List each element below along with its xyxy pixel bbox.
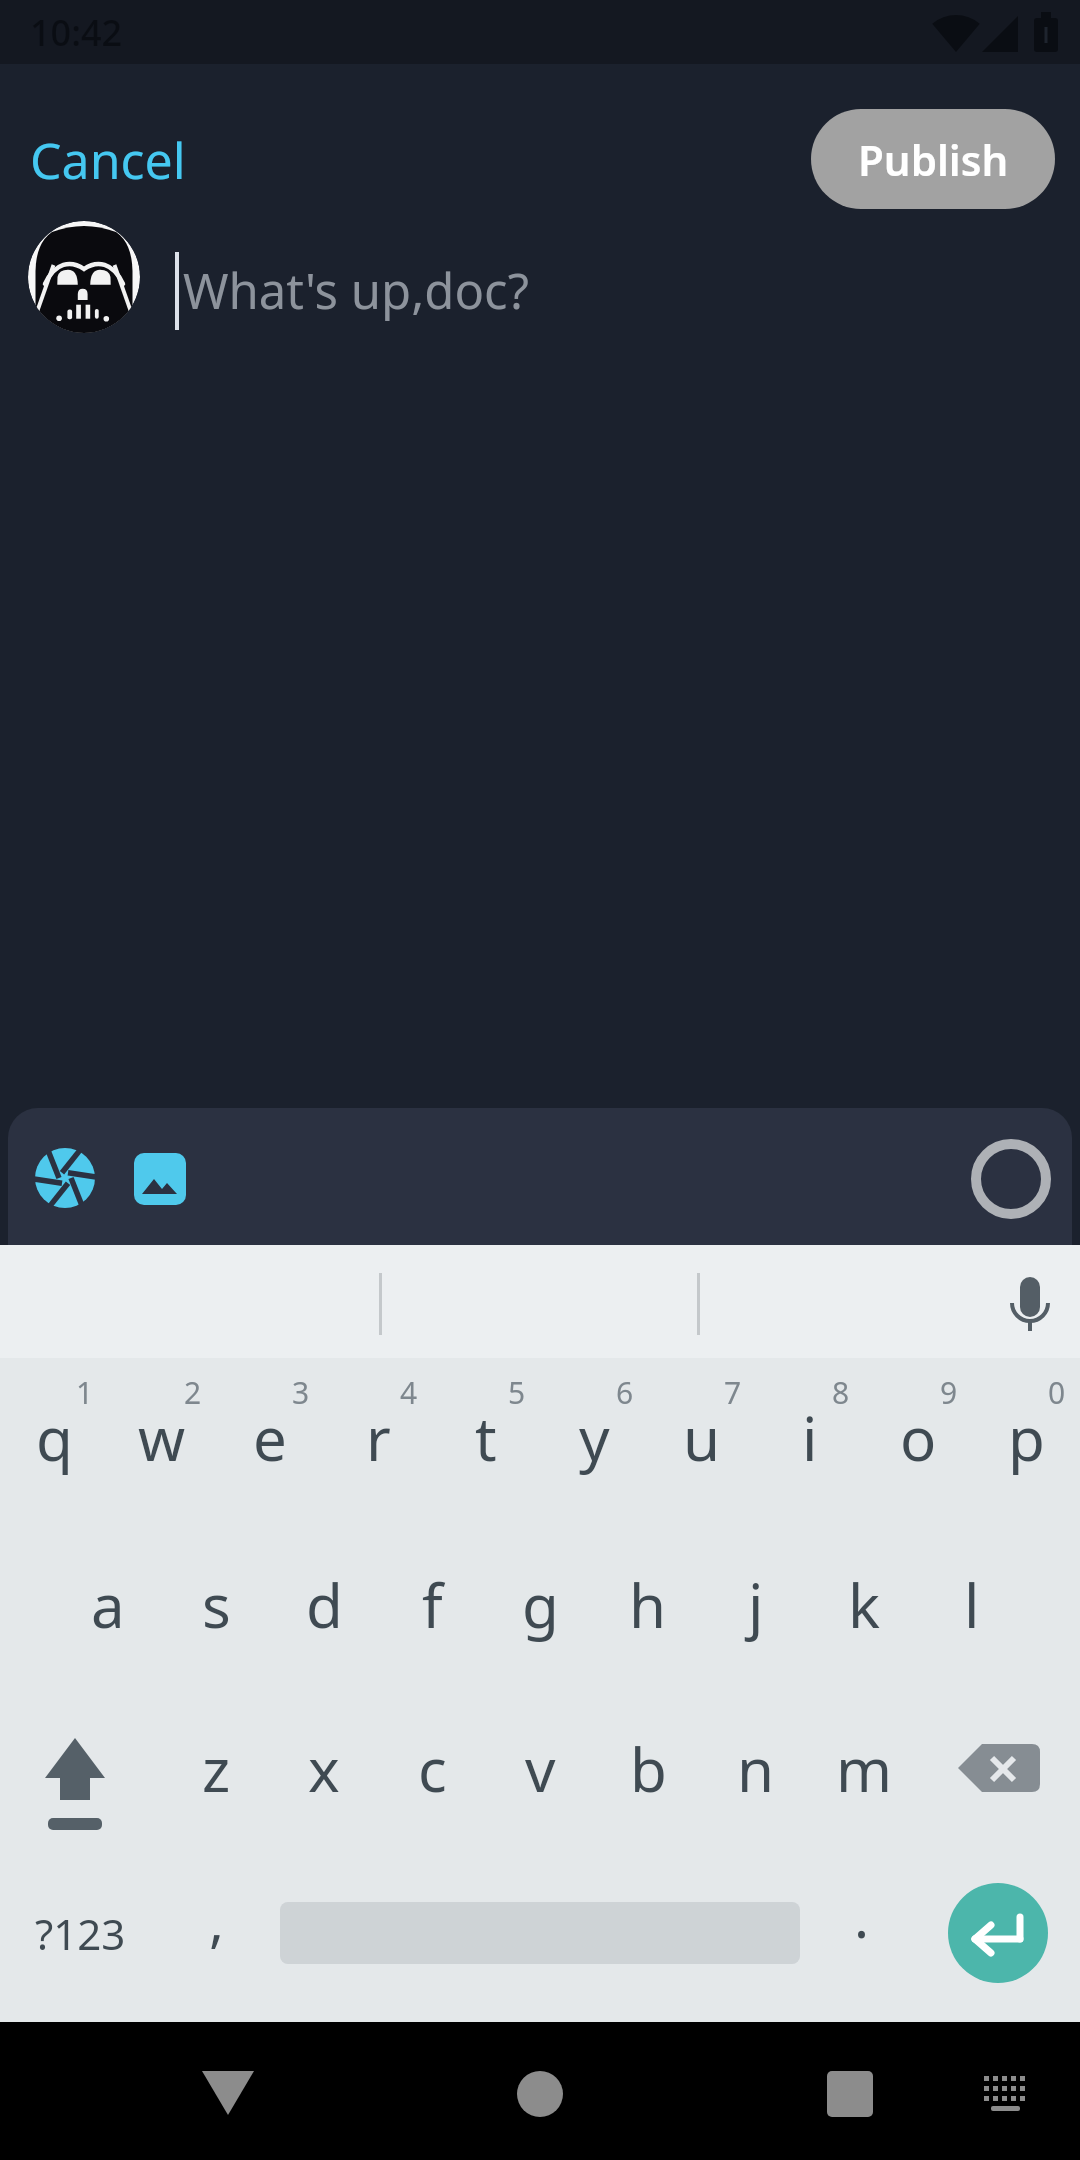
staticText: 6: [616, 1372, 634, 1413]
staticText: ,: [209, 1882, 225, 1958]
button[interactable]: [20, 1700, 140, 1840]
staticText: x: [308, 1728, 340, 1810]
staticText: c: [418, 1728, 447, 1810]
button[interactable]: q: [0, 1368, 108, 1508]
button[interactable]: [971, 1139, 1051, 1219]
button[interactable]: a: [54, 1530, 162, 1680]
button[interactable]: [178, 2044, 278, 2144]
button[interactable]: Publish: [811, 109, 1055, 209]
button[interactable]: l: [918, 1530, 1026, 1680]
staticText: k: [848, 1564, 881, 1646]
button[interactable]: y: [540, 1368, 648, 1508]
staticText: j: [748, 1564, 764, 1646]
staticText: a: [91, 1564, 125, 1646]
button[interactable]: v: [486, 1694, 594, 1844]
button[interactable]: c: [378, 1694, 486, 1844]
staticText: g: [522, 1564, 559, 1646]
button[interactable]: [33, 1146, 97, 1210]
staticText: y: [579, 1397, 610, 1479]
staticText: v: [525, 1728, 556, 1810]
staticText: n: [737, 1728, 775, 1810]
button[interactable]: o: [864, 1368, 972, 1508]
button[interactable]: ?123: [10, 1873, 150, 1993]
button[interactable]: r: [324, 1368, 432, 1508]
button[interactable]: p: [972, 1368, 1080, 1508]
staticText: 5: [508, 1372, 526, 1413]
button[interactable]: s: [162, 1530, 270, 1680]
button[interactable]: u: [648, 1368, 756, 1508]
staticText: t: [475, 1397, 497, 1479]
staticText: m: [836, 1728, 893, 1810]
staticText: 1: [76, 1372, 94, 1413]
button[interactable]: Cancel: [20, 110, 200, 210]
staticText: f: [422, 1564, 443, 1646]
staticText: d: [306, 1564, 343, 1646]
staticText: o: [900, 1397, 937, 1479]
button[interactable]: [960, 2050, 1050, 2140]
staticText: Cancel: [30, 126, 186, 194]
button[interactable]: j: [702, 1530, 810, 1680]
staticText: u: [683, 1397, 721, 1479]
staticText: z: [202, 1728, 231, 1810]
button[interactable]: [131, 1150, 189, 1208]
staticText: 10:42: [30, 8, 123, 57]
staticText: Publish: [858, 131, 1009, 188]
button[interactable]: [490, 2044, 590, 2144]
staticText: 9: [940, 1372, 958, 1413]
button[interactable]: [940, 1700, 1070, 1840]
button[interactable]: .: [822, 1856, 902, 1976]
button[interactable]: k: [810, 1530, 918, 1680]
staticText: 3: [292, 1372, 310, 1413]
staticText: 4: [400, 1372, 418, 1413]
staticText: i: [802, 1397, 818, 1479]
button[interactable]: g: [486, 1530, 594, 1680]
staticText: s: [202, 1564, 231, 1646]
button[interactable]: ,: [177, 1860, 257, 1980]
button[interactable]: n: [702, 1694, 810, 1844]
staticText: 0: [1048, 1372, 1066, 1413]
button[interactable]: e: [216, 1368, 324, 1508]
staticText: h: [629, 1564, 667, 1646]
staticText: p: [1008, 1397, 1045, 1479]
staticText: What's up,doc?: [183, 257, 529, 324]
staticText: e: [253, 1397, 287, 1479]
button[interactable]: m: [810, 1694, 918, 1844]
staticText: q: [36, 1397, 73, 1479]
button[interactable]: d: [270, 1530, 378, 1680]
button[interactable]: [948, 1883, 1048, 1983]
button[interactable]: i: [756, 1368, 864, 1508]
staticText: .: [854, 1878, 870, 1954]
staticText: l: [964, 1564, 980, 1646]
staticText: r: [366, 1397, 391, 1479]
staticText: 2: [184, 1372, 202, 1413]
button[interactable]: w: [108, 1368, 216, 1508]
button[interactable]: h: [594, 1530, 702, 1680]
staticText: ?123: [35, 1905, 126, 1962]
staticText: 8: [832, 1372, 850, 1413]
button[interactable]: x: [270, 1694, 378, 1844]
staticText: w: [138, 1397, 186, 1479]
button[interactable]: b: [594, 1694, 702, 1844]
button[interactable]: [800, 2044, 900, 2144]
button[interactable]: f: [378, 1530, 486, 1680]
button[interactable]: t: [432, 1368, 540, 1508]
staticText: b: [630, 1728, 667, 1810]
button[interactable]: z: [162, 1694, 270, 1844]
staticText: 7: [724, 1372, 742, 1413]
